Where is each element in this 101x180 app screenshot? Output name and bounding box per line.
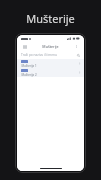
other: Search (76, 53, 80, 57)
staticText: Mušterija 1 (21, 64, 37, 68)
button[interactable]: Traži po nazivu ili imenu (17, 51, 84, 59)
staticText: Mušterija 2 (21, 73, 37, 77)
button[interactable]: Mušterija 2 (17, 68, 84, 77)
button[interactable]: More options (73, 43, 80, 50)
button[interactable]: Mušterija 1 (17, 59, 84, 68)
staticText: Mušterije (26, 11, 75, 26)
staticText: Traži po nazivu ili imenu (21, 53, 57, 57)
button[interactable]: Menu (21, 43, 28, 50)
staticText: Mušterije (42, 44, 59, 49)
